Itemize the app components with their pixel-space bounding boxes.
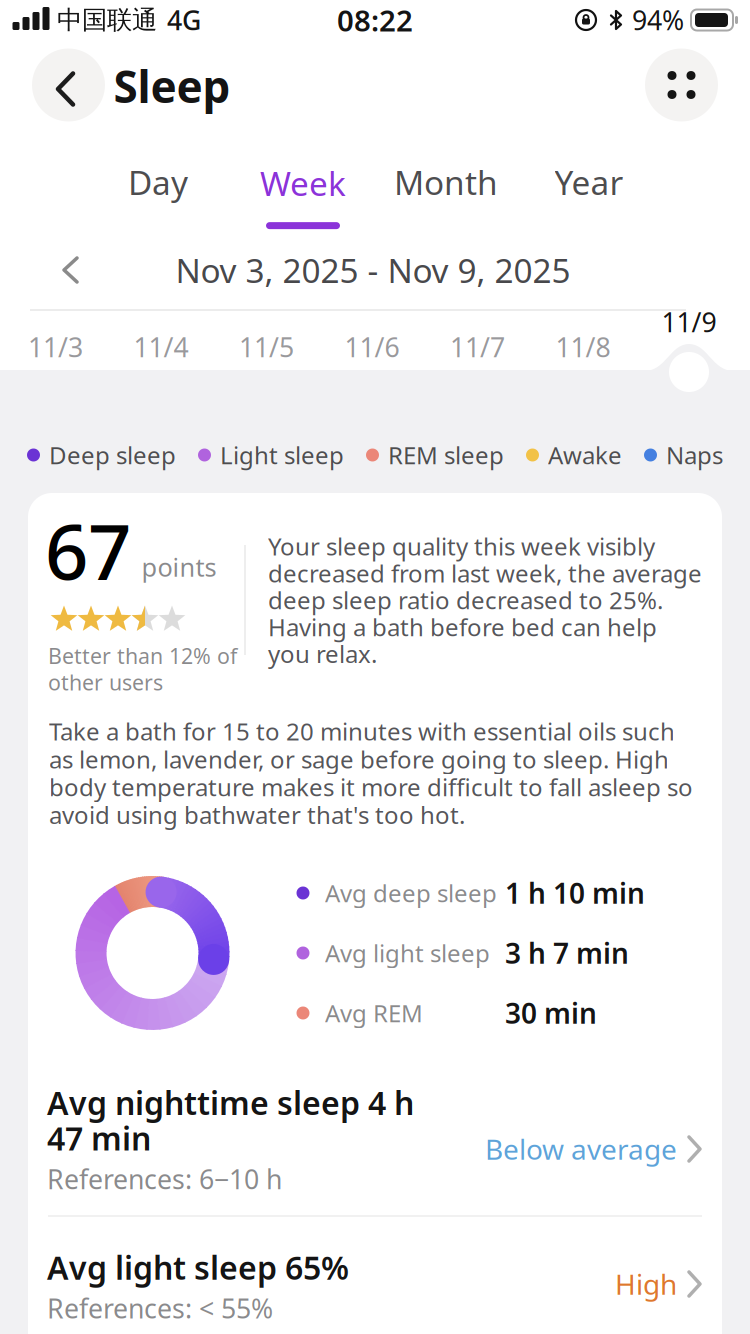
staticText: Light sleep bbox=[220, 439, 344, 471]
button[interactable]: 11/7 bbox=[437, 325, 517, 369]
button[interactable]: 11/5 bbox=[226, 325, 306, 369]
staticText: Avg deep sleep bbox=[325, 877, 497, 909]
staticText: Deep sleep bbox=[49, 439, 176, 471]
staticText: 11/7 bbox=[450, 329, 505, 365]
staticText: 94% bbox=[632, 2, 684, 38]
button[interactable]: 11/9 bbox=[649, 300, 729, 344]
button[interactable]: 11/6 bbox=[332, 325, 412, 369]
button[interactable]: Previous week bbox=[59, 255, 83, 285]
staticText: 中国联通 bbox=[57, 4, 157, 35]
staticText: Better than 12% of other users bbox=[48, 642, 237, 696]
button[interactable]: Avg nighttime sleep 4 h 47 min bbox=[47, 1081, 703, 1197]
staticText: Your sleep quality this week visibly dec… bbox=[268, 530, 702, 670]
staticText: 11/4 bbox=[133, 329, 188, 365]
button[interactable]: Back bbox=[32, 48, 105, 121]
staticText: 08:22 bbox=[337, 0, 413, 39]
staticText: 11/6 bbox=[344, 329, 399, 365]
button[interactable]: Month bbox=[381, 152, 511, 212]
button[interactable]: Week bbox=[260, 161, 346, 229]
staticText: Naps bbox=[666, 439, 723, 471]
staticText: Avg nighttime sleep 4 h 47 min bbox=[47, 1081, 414, 1159]
staticText: 11/9 bbox=[661, 304, 716, 340]
staticText: Avg REM bbox=[325, 997, 423, 1029]
staticText: points bbox=[141, 550, 216, 584]
staticText: 11/5 bbox=[239, 329, 294, 365]
button[interactable]: 11/3 bbox=[15, 325, 95, 369]
staticText: Avg light sleep bbox=[325, 937, 490, 969]
button[interactable]: Avg light sleep 65% bbox=[47, 1246, 703, 1326]
staticText: Take a bath for 15 to 20 minutes with es… bbox=[49, 715, 693, 831]
staticText: 67 bbox=[45, 499, 131, 600]
button[interactable]: Year bbox=[524, 152, 654, 212]
button[interactable]: More bbox=[645, 48, 718, 121]
staticText: Month bbox=[394, 160, 498, 204]
staticText: 11/3 bbox=[28, 329, 83, 365]
staticText: 3 h 7 min bbox=[505, 934, 629, 972]
staticText: Day bbox=[128, 160, 188, 204]
staticText: Awake bbox=[548, 439, 622, 471]
staticText: 4G bbox=[167, 2, 201, 38]
button[interactable]: Day bbox=[93, 152, 223, 212]
staticText: Week bbox=[260, 161, 346, 205]
staticText: REM sleep bbox=[388, 439, 504, 471]
button[interactable]: 11/4 bbox=[121, 325, 201, 369]
staticText: Nov 3, 2025 - Nov 9, 2025 bbox=[175, 248, 570, 292]
staticText: References: 6−10 h bbox=[47, 1161, 282, 1197]
staticText: References: < 55% bbox=[47, 1290, 273, 1326]
staticText: Avg light sleep 65% bbox=[47, 1246, 349, 1288]
staticText: Below average bbox=[485, 1130, 677, 1168]
staticText: 1 h 10 min bbox=[505, 874, 645, 912]
staticText: 11/8 bbox=[555, 329, 610, 365]
staticText: Sleep bbox=[113, 57, 230, 115]
staticText: High bbox=[615, 1265, 677, 1303]
staticText: Year bbox=[554, 160, 623, 204]
staticText: 30 min bbox=[505, 994, 597, 1032]
button[interactable]: 11/8 bbox=[543, 325, 623, 369]
